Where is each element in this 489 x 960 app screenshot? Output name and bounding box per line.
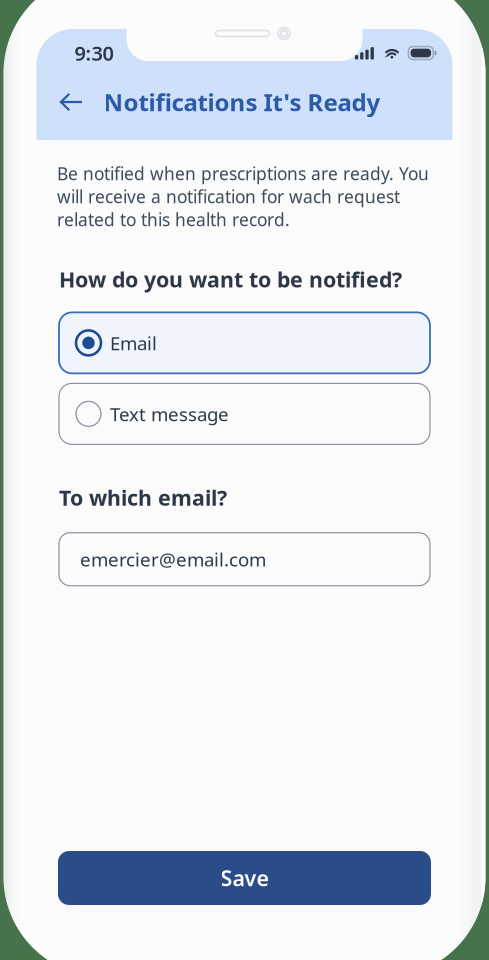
button[interactable]: Email (59, 312, 430, 373)
button[interactable]: Text message (59, 383, 430, 444)
staticText: Save (220, 864, 268, 892)
staticText: To which email? (59, 483, 227, 512)
staticText: emercier@email.com (80, 547, 266, 572)
staticText: Notifications It's Ready (103, 86, 380, 118)
button[interactable]: Save (58, 851, 431, 905)
staticText: How do you want to be notified? (59, 265, 402, 293)
staticText: Text message (110, 401, 229, 426)
staticText: 9:30 (74, 40, 113, 66)
button[interactable]: emercier@email.com (59, 533, 430, 586)
staticText: Be notified when prescriptions are ready… (57, 162, 429, 231)
button[interactable]: Back (56, 85, 86, 119)
staticText: Email (110, 330, 157, 355)
